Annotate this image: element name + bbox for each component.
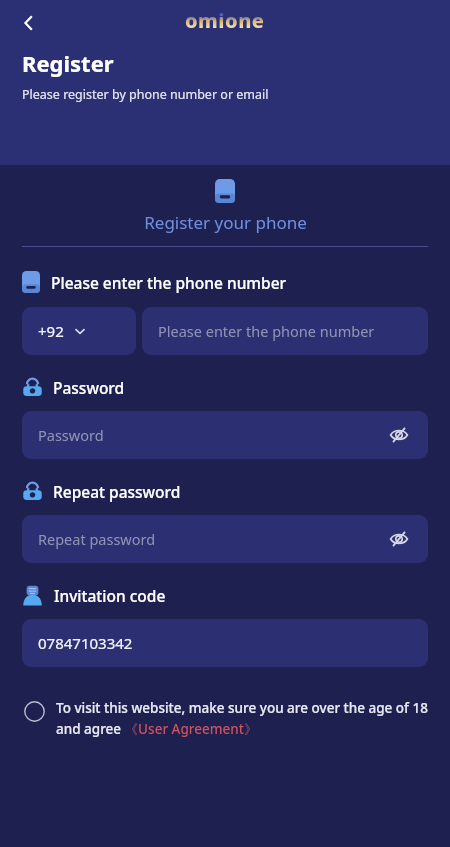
staticText: omione [185,7,265,34]
staticText: Please enter the phone number [158,321,375,341]
staticText: Password [53,377,125,398]
staticText: Register your phone [144,211,307,234]
button[interactable]: Show password [386,422,412,448]
button[interactable]: Show password [386,526,412,552]
staticText: Please enter the phone number [51,272,287,293]
button[interactable]: Password [22,411,428,459]
button[interactable]: +92 [22,307,136,355]
staticText: 07847103342 [38,633,133,653]
staticText: +92 [38,321,64,341]
staticText: Please register by phone number or email [22,86,269,103]
staticText: To visit this website, make sure you are… [56,699,428,738]
staticText: Password [38,425,104,445]
button[interactable]: Back [10,4,48,42]
button[interactable]: 07847103342 [22,619,428,667]
button[interactable]: Please enter the phone number [142,307,428,355]
staticText: Repeat password [38,529,156,549]
button[interactable]: Repeat password [22,515,428,563]
button[interactable]: To visit this website, make sure you are… [22,699,428,738]
staticText: Register [22,48,114,78]
staticText: Invitation code [54,585,166,606]
staticText: Repeat password [53,481,181,502]
